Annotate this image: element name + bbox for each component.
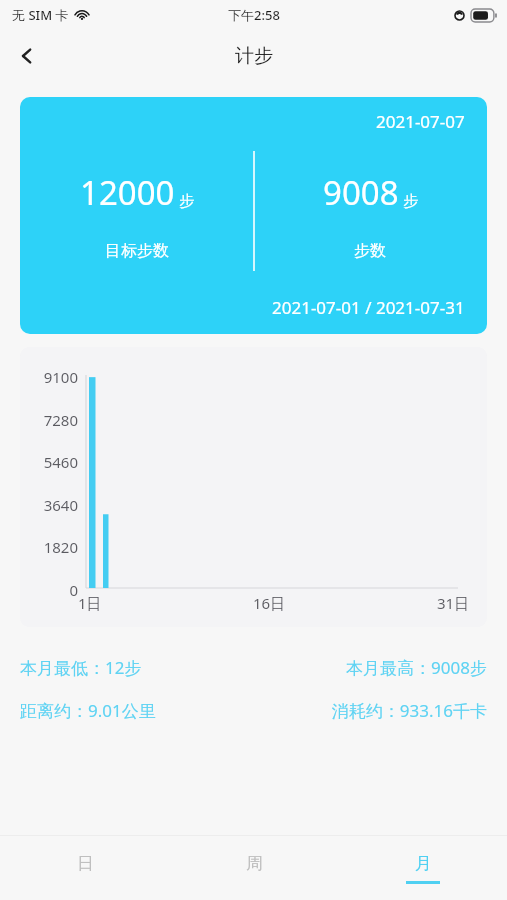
staticText: 2021-07-07	[376, 110, 465, 133]
staticText: 步	[179, 192, 194, 211]
staticText: 目标步数	[105, 241, 169, 261]
staticText: 下午2:58	[228, 6, 280, 24]
button[interactable]: 2021-07-07	[20, 97, 487, 334]
button[interactable]: 周	[169, 836, 338, 900]
staticText: 日	[77, 853, 94, 874]
button[interactable]: 日	[0, 836, 169, 900]
staticText: 本月最低：12步	[20, 656, 253, 679]
staticText: 31日	[437, 593, 470, 613]
staticText: 7280	[43, 410, 78, 430]
staticText: 9008	[323, 170, 399, 215]
staticText: 无 SIM 卡	[12, 6, 69, 24]
staticText: 1日	[78, 593, 102, 613]
staticText: 3640	[43, 495, 78, 515]
staticText: 周	[246, 853, 263, 874]
button[interactable]: 月	[338, 836, 507, 900]
staticText: 12000	[80, 170, 175, 215]
staticText: 步数	[354, 241, 386, 261]
staticText: 5460	[43, 452, 78, 472]
staticText: 距离约：9.01公里	[20, 699, 253, 722]
staticText: 本月最高：9008步	[253, 656, 487, 679]
staticText: 计步	[235, 44, 273, 68]
staticText: 16日	[253, 593, 286, 613]
staticText: 月	[415, 853, 432, 874]
staticText: 9100	[43, 367, 78, 387]
staticText: 消耗约：933.16千卡	[253, 699, 487, 722]
staticText: 2021-07-01 / 2021-07-31	[272, 296, 465, 319]
button[interactable]: Back	[0, 30, 54, 82]
staticText: 步	[403, 192, 418, 211]
staticText: 0	[69, 580, 78, 600]
staticText: 1820	[43, 537, 78, 557]
